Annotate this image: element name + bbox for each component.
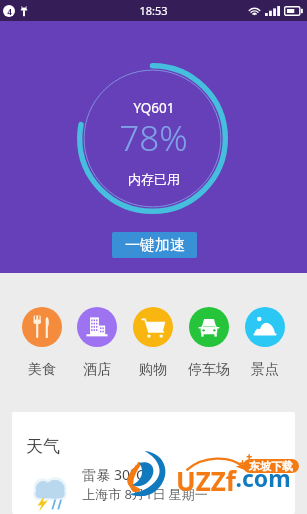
staticText: 4: [7, 6, 12, 17]
staticText: 内存已用: [128, 171, 180, 187]
staticText: 酒店: [83, 361, 111, 379]
button[interactable]: 一键加速: [112, 232, 197, 258]
staticText: YQ601: [133, 99, 175, 117]
staticText: 美食: [28, 361, 56, 379]
staticText: 购物: [139, 361, 167, 379]
button[interactable]: 停车场: [181, 273, 237, 379]
staticText: 78%: [119, 114, 188, 162]
staticText: 54km/h 57%: [25, 510, 95, 514]
staticText: 停车场: [188, 361, 230, 379]
staticText: 东坡下载: [249, 459, 293, 473]
staticText: 上海市 8月1日 星期一: [82, 485, 208, 503]
button[interactable]: 酒店: [69, 273, 125, 379]
staticText: 一键加速: [125, 236, 185, 255]
button[interactable]: 美食: [14, 273, 69, 379]
staticText: UZZf: [176, 463, 236, 498]
button[interactable]: 购物: [125, 273, 181, 379]
staticText: 天气: [26, 436, 60, 457]
button[interactable]: 景点: [237, 273, 293, 379]
staticText: .com: [235, 462, 291, 493]
staticText: 雷暴 30°C: [82, 465, 145, 484]
button[interactable]: 天气: [12, 412, 295, 514]
staticText: 景点: [251, 361, 279, 379]
staticText: 18:53: [139, 3, 168, 18]
